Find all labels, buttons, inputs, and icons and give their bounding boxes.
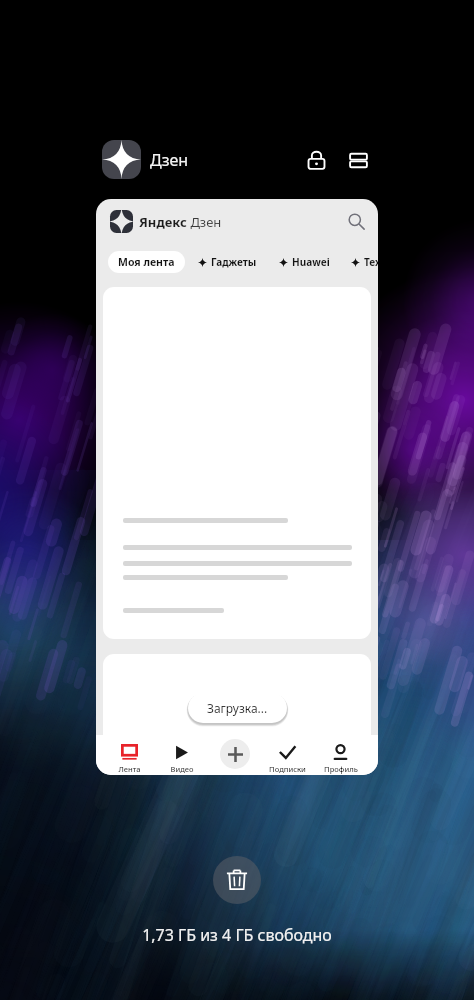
button[interactable]: Моя лента [108, 251, 185, 273]
staticText: 1,73 ГБ из 4 ГБ свободно [0, 924, 474, 946]
staticText: Тех [364, 255, 378, 269]
button[interactable]: Подписки [261, 735, 314, 774]
button[interactable]: Загрузка... [188, 693, 287, 723]
button[interactable]: Search [344, 210, 368, 233]
staticText: Моя лента [118, 255, 175, 269]
staticText: Загрузка... [207, 700, 268, 716]
button[interactable]: Тех [351, 255, 378, 269]
button[interactable]: Split screen [343, 145, 373, 175]
button[interactable]: Видео [155, 735, 208, 774]
button[interactable]: Clear all [213, 856, 261, 904]
button[interactable]: Гаджеты [198, 255, 257, 269]
button[interactable]: Lock app [301, 145, 331, 175]
staticText: Видео [170, 764, 194, 774]
button[interactable] [103, 287, 371, 639]
staticText: Дзен [150, 149, 189, 171]
button[interactable]: Dzen app icon [102, 140, 141, 179]
staticText: Дзен [187, 213, 222, 231]
button[interactable]: Профиль [314, 735, 367, 774]
staticText: Профиль [324, 764, 358, 774]
staticText: Лента [118, 764, 141, 774]
button[interactable]: Add [220, 739, 250, 769]
staticText: Гаджеты [211, 255, 257, 269]
button[interactable]: Huawei [279, 255, 330, 269]
button[interactable]: Лента [103, 735, 155, 774]
staticText: Huawei [292, 255, 330, 269]
staticText: Яндекс [139, 213, 187, 231]
staticText: Подписки [269, 764, 306, 774]
button[interactable]: Яндекс [96, 199, 378, 775]
